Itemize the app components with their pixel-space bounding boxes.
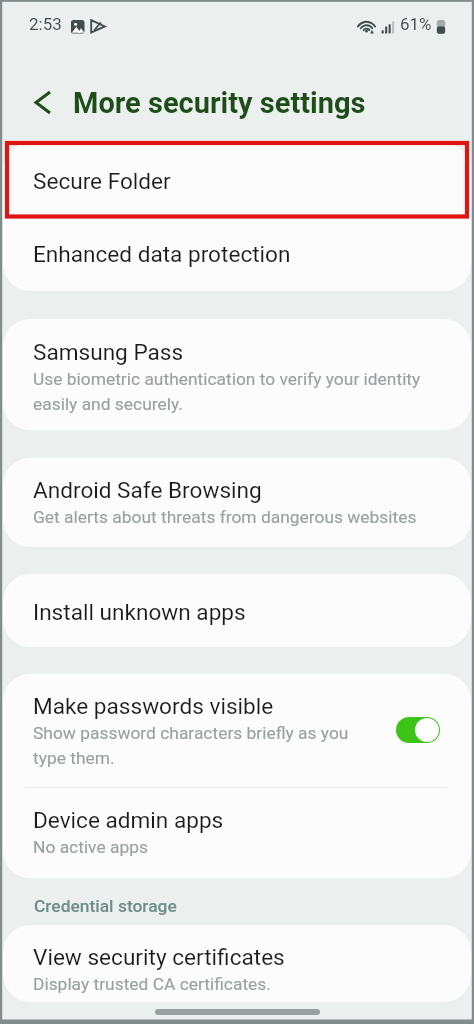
button[interactable]: Enhanced data protection bbox=[3, 217, 471, 291]
staticText: Credential storage bbox=[34, 896, 177, 916]
button[interactable]: Device admin apps bbox=[3, 788, 471, 878]
staticText: Make passwords visible bbox=[33, 693, 274, 719]
staticText: Use biometric authentication to verify y… bbox=[33, 369, 421, 414]
staticText: Device admin apps bbox=[33, 807, 224, 833]
staticText: 61% bbox=[400, 14, 432, 34]
staticText: View security certificates bbox=[33, 944, 285, 970]
staticText: Show password characters briefly as you … bbox=[33, 723, 349, 768]
button[interactable]: Samsung Pass bbox=[3, 319, 471, 430]
button[interactable]: Secure Folder bbox=[3, 143, 471, 217]
button[interactable]: View security certificates bbox=[3, 925, 471, 1002]
button[interactable]: Install unknown apps bbox=[3, 574, 471, 647]
staticText: Samsung Pass bbox=[33, 339, 184, 365]
staticText: Display trusted CA certificates. bbox=[33, 974, 271, 994]
staticText: More security settings bbox=[73, 86, 366, 120]
button[interactable]: Make passwords visible bbox=[3, 674, 471, 788]
staticText: Enhanced data protection bbox=[33, 241, 291, 267]
staticText: Android Safe Browsing bbox=[33, 477, 262, 503]
button[interactable]: Make passwords visible toggle bbox=[396, 717, 440, 743]
staticText: 2:53 bbox=[29, 14, 62, 34]
staticText: Get alerts about threats from dangerous … bbox=[33, 507, 417, 527]
button[interactable]: Android Safe Browsing bbox=[3, 458, 471, 547]
staticText: Install unknown apps bbox=[33, 599, 246, 625]
button[interactable]: Navigate up bbox=[22, 79, 64, 125]
staticText: No active apps bbox=[33, 837, 148, 857]
staticText: Secure Folder bbox=[33, 168, 171, 194]
